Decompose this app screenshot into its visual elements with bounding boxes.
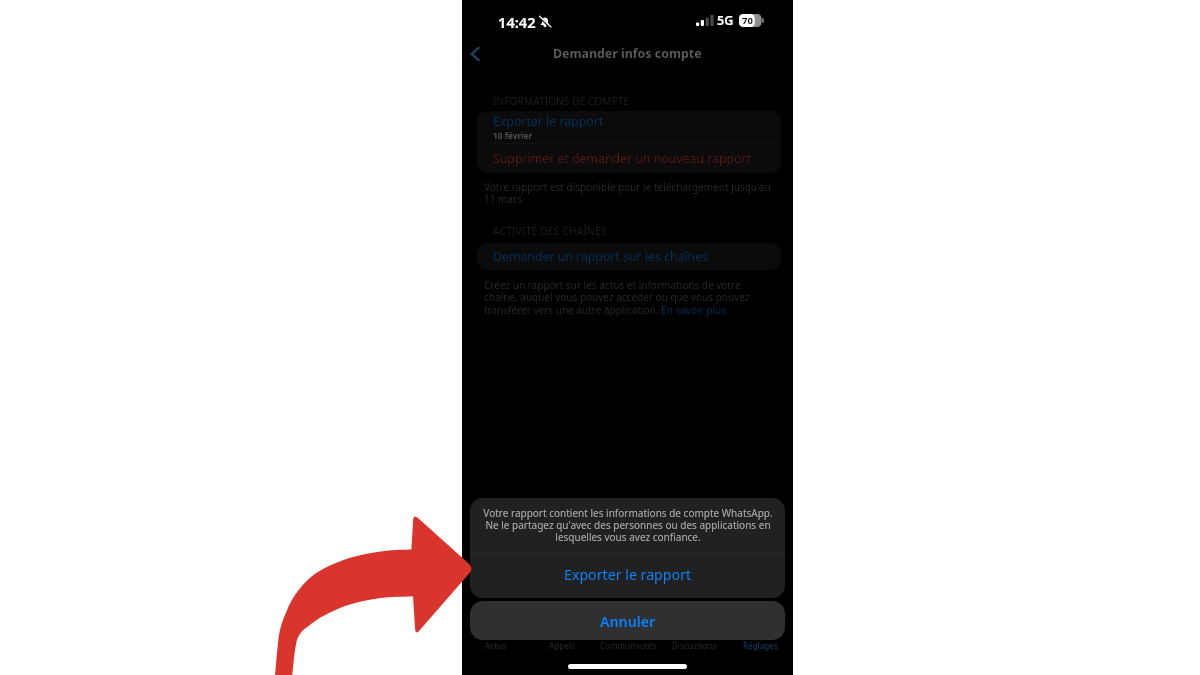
staticText: Exporter le rapport	[564, 565, 692, 584]
staticText: Demander infos compte	[553, 45, 702, 62]
staticText: 10 février	[493, 130, 533, 141]
staticText: 14:42	[498, 12, 536, 32]
staticText: Appels	[549, 640, 575, 651]
button[interactable]: Exporter le rapport	[470, 554, 785, 598]
staticText: Demander un rapport sur les chaînes	[493, 248, 709, 265]
button[interactable]: Back	[462, 41, 491, 67]
button[interactable]: Appels	[529, 640, 595, 654]
button[interactable]: Actus	[462, 640, 529, 654]
staticText: Annuler	[600, 612, 656, 631]
staticText: 5G	[717, 12, 734, 29]
staticText: 70	[742, 14, 753, 27]
staticText: Exporter le rapport	[493, 113, 604, 130]
button[interactable]: Demander un rapport sur les chaînes	[477, 243, 781, 270]
button[interactable]: Supprimer et demander un nouveau rapport	[477, 144, 781, 173]
staticText: Votre rapport est disponible pour le tél…	[484, 180, 774, 206]
staticText: Actus	[485, 640, 507, 651]
staticText: Communautés	[600, 640, 657, 651]
button[interactable]: Communautés	[595, 640, 661, 654]
staticText: Réglages	[743, 640, 778, 651]
staticText: ACTIVITÉ DES CHAÎNES	[493, 224, 607, 238]
button[interactable]: Annuler	[470, 601, 785, 640]
button[interactable]: Réglages	[727, 640, 793, 654]
button[interactable]: Discussions	[661, 640, 727, 654]
button[interactable]: Exporter le rapport	[477, 111, 781, 143]
staticText: Votre rapport contient les informations …	[483, 506, 773, 544]
staticText: INFORMATIONS DE COMPTE	[493, 94, 630, 108]
staticText: Créez un rapport sur les actus et inform…	[484, 278, 756, 317]
staticText: Supprimer et demander un nouveau rapport	[493, 150, 752, 167]
staticText: Discussions	[672, 640, 717, 651]
